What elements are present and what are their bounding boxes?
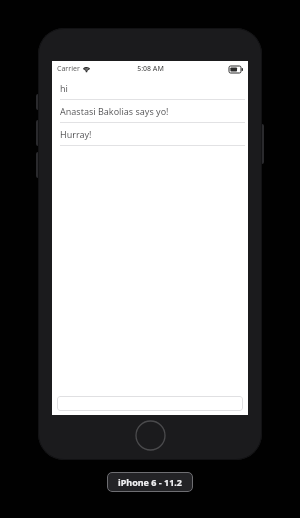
staticText: iPhone 6 - 11.2 (118, 476, 182, 488)
staticText: Anastasi Bakolias says yo! (60, 105, 169, 117)
button[interactable]: iPhone 6 - 11.2 (118, 476, 182, 488)
button[interactable]: Anastasi Bakolias says yo! (52, 100, 248, 123)
button[interactable]: Message input field (57, 396, 243, 411)
staticText: Carrier (57, 64, 80, 74)
button[interactable]: Home (135, 420, 166, 451)
button[interactable]: hi (52, 77, 248, 100)
staticText: 5:08 AM (137, 64, 164, 74)
staticText: Hurray! (60, 128, 92, 140)
button[interactable]: Hurray! (52, 123, 248, 146)
staticText: hi (60, 82, 68, 94)
